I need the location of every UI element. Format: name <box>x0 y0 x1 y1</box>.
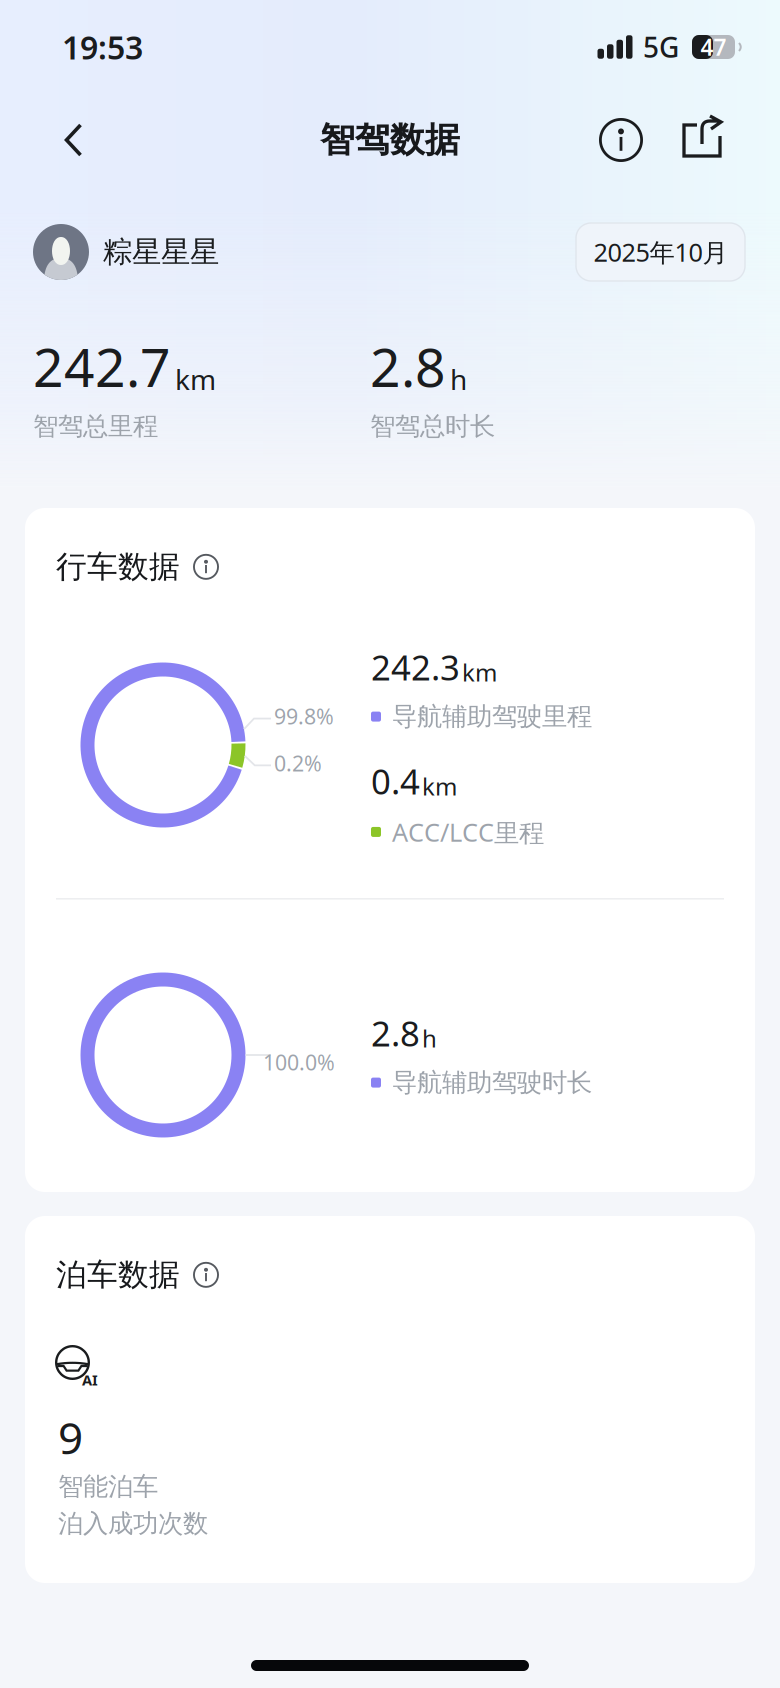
staticText: 100.0% <box>263 1048 335 1076</box>
staticText: km <box>422 770 457 802</box>
staticText: 泊入成功次数 <box>58 1508 208 1539</box>
staticText: 智能泊车 <box>58 1471 158 1502</box>
staticText: 47 <box>700 32 726 62</box>
staticText: 智驾数据 <box>320 119 460 161</box>
staticText: 2.8 <box>371 1010 420 1056</box>
button[interactable]: Info <box>570 94 672 186</box>
staticText: 粽星星星 <box>103 234 219 270</box>
staticText: 0.4 <box>371 758 420 804</box>
staticText: h <box>450 361 467 398</box>
staticText: km <box>462 656 497 688</box>
button[interactable]: 2025年10月 <box>576 223 745 281</box>
staticText: 智驾总里程 <box>33 411 158 442</box>
button[interactable]: 泊车数据说明 <box>193 1262 219 1288</box>
staticText: 导航辅助驾驶里程 <box>392 701 592 732</box>
staticText: 2.8 <box>370 331 446 402</box>
staticText: 5G <box>643 28 679 66</box>
button[interactable]: Back <box>28 94 120 186</box>
staticText: 泊车数据 <box>56 1256 180 1294</box>
staticText: 9 <box>58 1408 83 1466</box>
staticText: 99.8% <box>274 702 334 730</box>
button[interactable]: Share <box>672 94 734 186</box>
staticText: h <box>422 1022 437 1054</box>
staticText: ACC/LCC里程 <box>392 815 544 849</box>
button[interactable]: 行车数据说明 <box>193 554 219 580</box>
staticText: 0.2% <box>274 749 322 777</box>
staticText: 导航辅助驾驶时长 <box>392 1067 592 1098</box>
staticText: 242.7 <box>33 331 171 402</box>
staticText: 19:53 <box>62 26 143 68</box>
staticText: AI <box>82 1370 98 1389</box>
staticText: 行车数据 <box>56 548 180 586</box>
staticText: 2025年10月 <box>593 235 727 269</box>
staticText: 242.3 <box>371 644 460 690</box>
staticText: km <box>175 361 216 398</box>
staticText: 智驾总时长 <box>370 411 495 442</box>
